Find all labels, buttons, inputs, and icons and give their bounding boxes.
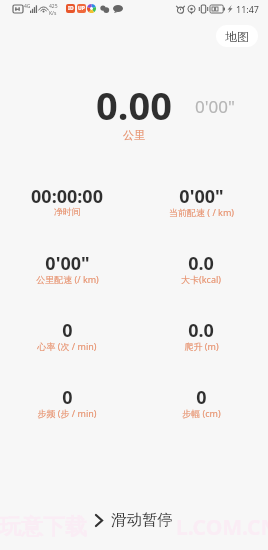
staticText: 0'00" [179,184,224,209]
staticText: UP [78,5,85,12]
staticText: 爬升 (m) [184,340,219,352]
staticText: 地图 [225,29,249,44]
staticText: L.COM.CN [176,513,268,542]
staticText: 0 [62,385,73,410]
staticText: 00:00:00 [31,184,103,209]
staticText: 0 [196,385,207,410]
staticText: 公里 [123,128,145,142]
staticText: 净时间 [54,206,81,217]
staticText: 0'00" [45,251,90,276]
button[interactable]: 滑动暂停 [0,490,268,550]
staticText: 0.0 [188,318,214,343]
staticText: 4G [24,3,31,10]
staticText: ID [68,5,74,12]
button[interactable]: 地图 [216,25,258,47]
staticText: 0.00 [96,79,172,131]
staticText: 步幅 (cm) [182,407,221,419]
staticText: 滑动暂停 [111,510,173,530]
staticText: K/s [49,10,57,17]
staticText: 0.0 [188,251,214,276]
staticText: 425 [49,3,58,10]
staticText: 11:47 [236,3,260,15]
staticText: 玩意下载 [0,513,87,541]
staticText: 0 [62,318,73,343]
staticText: 公里配速 (/ km) [36,273,99,285]
staticText: 0'00" [195,95,235,118]
staticText: 步频 (步 / min) [37,407,97,419]
staticText: 大卡(kcal) [181,273,221,285]
staticText: 当前配速 ( / km) [169,206,234,218]
staticText: 心率 (次 / min) [37,340,97,352]
